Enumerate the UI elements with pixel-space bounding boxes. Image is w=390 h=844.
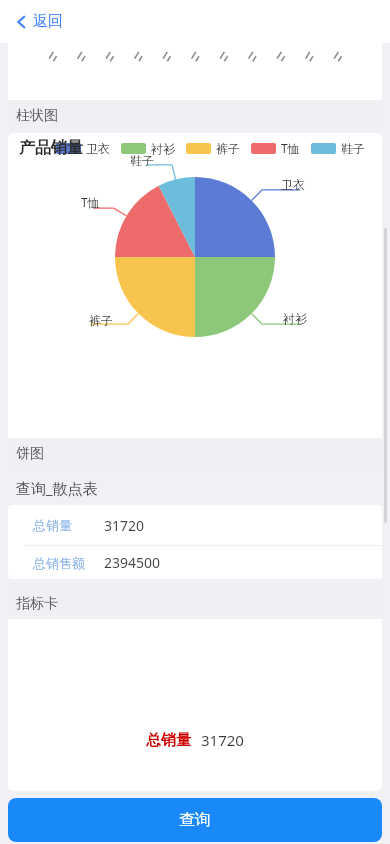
- button[interactable]: 裤子: [186, 141, 240, 156]
- button[interactable]: 总销量: [8, 505, 382, 545]
- button[interactable]: T恤: [251, 140, 300, 156]
- staticText: 查询_散点表: [16, 478, 98, 498]
- staticText: 总销售额: [33, 555, 85, 571]
- staticText: 鞋子: [341, 141, 365, 156]
- button[interactable]: 鞋子: [311, 141, 365, 156]
- staticText: 卫衣: [281, 177, 305, 192]
- staticText: 查询: [179, 810, 211, 830]
- staticText: 产品销量: [19, 138, 83, 158]
- button[interactable]: 返回: [12, 7, 68, 36]
- staticText: 鞋子: [130, 153, 154, 168]
- staticText: 返回: [33, 12, 63, 31]
- staticText: 饼图: [16, 445, 44, 463]
- staticText: 衬衫: [151, 141, 175, 156]
- staticText: 裤子: [216, 141, 240, 156]
- button[interactable]: 查询: [8, 798, 382, 842]
- staticText: 2394500: [104, 553, 161, 572]
- button[interactable]: 衬衫: [121, 141, 175, 156]
- staticText: 裤子: [89, 313, 113, 328]
- staticText: 指标卡: [16, 595, 58, 613]
- staticText: 总销量: [146, 731, 191, 750]
- staticText: 柱状图: [16, 107, 58, 125]
- staticText: 31720: [201, 730, 244, 750]
- staticText: T恤: [281, 140, 300, 156]
- staticText: 31720: [104, 516, 145, 535]
- staticText: 衬衫: [283, 311, 307, 326]
- other: 返回: [17, 15, 26, 29]
- staticText: 卫衣: [86, 141, 110, 156]
- staticText: T恤: [81, 194, 100, 210]
- button[interactable]: 总销售额: [8, 546, 382, 579]
- staticText: 总销量: [33, 517, 72, 533]
- button[interactable]: 卫衣: [56, 141, 110, 156]
